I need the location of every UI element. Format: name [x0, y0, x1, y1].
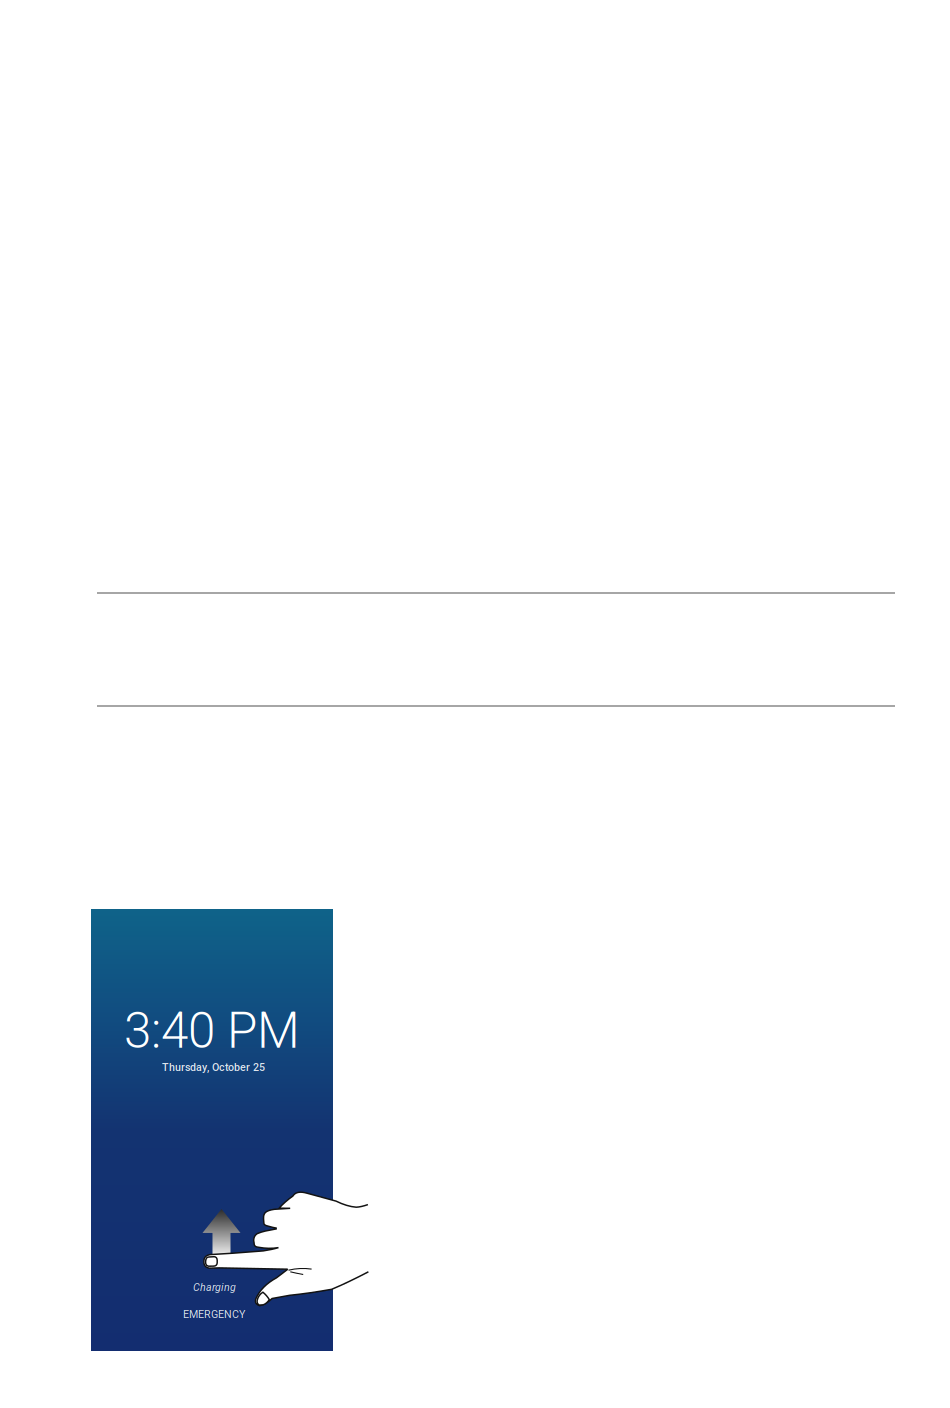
staticText: 3:40 PM	[124, 1002, 300, 1060]
staticText: Charging	[193, 1281, 236, 1293]
staticText: EMERGENCY	[183, 1308, 245, 1320]
button[interactable]: EMERGENCY	[183, 1308, 245, 1320]
staticText: Thursday, October 25	[162, 1061, 265, 1073]
